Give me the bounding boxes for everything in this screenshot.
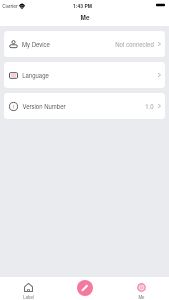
staticText: Label <box>23 294 34 300</box>
staticText: 1:43 PM <box>73 2 92 9</box>
staticText: Me <box>80 13 90 22</box>
staticText: Language <box>22 71 49 80</box>
button[interactable]: Language <box>4 62 165 88</box>
button[interactable]: Label <box>0 277 57 300</box>
staticText: My Device <box>22 40 50 49</box>
button[interactable]: Version Number <box>4 93 165 119</box>
staticText: Carrier <box>2 2 18 9</box>
staticText: 1.0 <box>145 102 154 111</box>
button[interactable]: My Device <box>4 31 165 57</box>
button[interactable]: Compose <box>77 280 93 296</box>
button[interactable]: Me <box>113 277 169 300</box>
staticText: Me <box>138 294 145 300</box>
staticText: Version Number <box>22 102 66 111</box>
staticText: Not connected <box>115 40 154 49</box>
